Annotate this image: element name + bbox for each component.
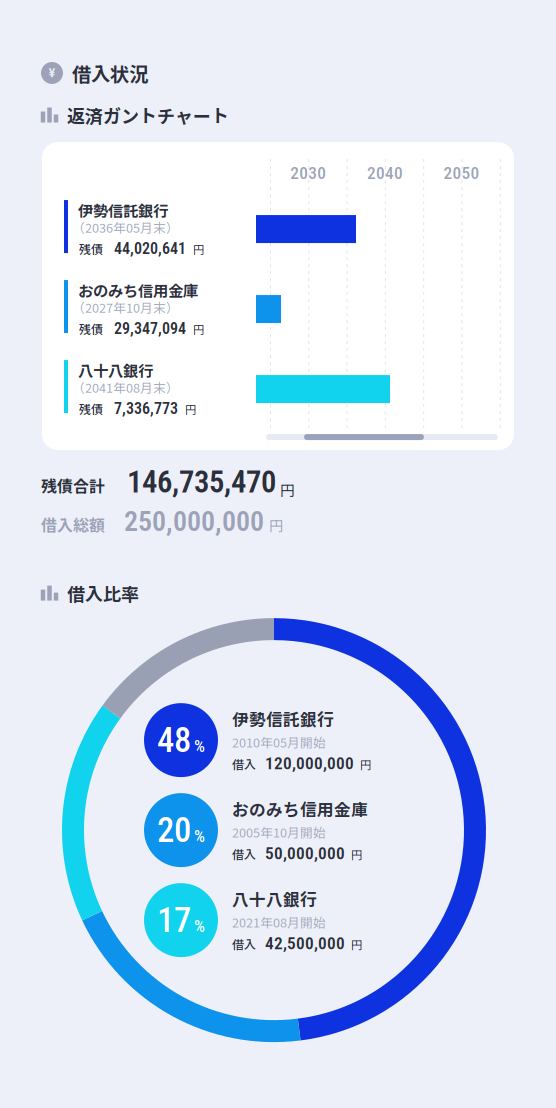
staticText: 44,020,641	[114, 239, 186, 258]
staticText: ¥	[48, 66, 55, 80]
staticText: 借入	[232, 935, 256, 953]
staticText: 残債合計	[41, 474, 105, 497]
staticText: 円	[185, 401, 196, 417]
staticText: （2027年10月末）	[72, 298, 179, 316]
staticText: （2041年08月末）	[72, 378, 179, 396]
staticText: 借入総額	[41, 513, 105, 536]
staticText: 48	[157, 720, 191, 760]
staticText: 17	[157, 900, 191, 940]
staticText: 円	[280, 479, 295, 500]
staticText: 八十八銀行	[232, 887, 317, 911]
staticText: 返済ガントチャート	[67, 102, 229, 128]
staticText: 円	[360, 756, 371, 772]
staticText: 借入状況	[72, 59, 148, 87]
staticText: 円	[269, 515, 283, 535]
staticText: 20	[157, 810, 191, 850]
staticText: 42,500,000	[265, 933, 345, 953]
staticText: 残債	[79, 240, 103, 257]
staticText: %	[194, 826, 205, 846]
staticText: 借入比率	[67, 580, 139, 606]
staticText: おのみち信用金庫	[78, 279, 198, 301]
staticText: （2036年05月末）	[72, 218, 179, 236]
staticText: %	[194, 916, 205, 936]
staticText: 7,336,773	[114, 399, 178, 418]
staticText: 円	[193, 241, 204, 257]
staticText: %	[194, 736, 205, 756]
staticText: 2010年05月開始	[232, 733, 326, 751]
staticText: おのみち信用金庫	[232, 797, 368, 821]
staticText: 2030	[290, 163, 326, 183]
staticText: 円	[351, 846, 362, 862]
staticText: 2005年10月開始	[232, 823, 326, 841]
staticText: 伊勢信託銀行	[232, 707, 334, 731]
staticText: 円	[351, 936, 362, 952]
staticText: 146,735,470	[127, 464, 276, 500]
staticText: 50,000,000	[265, 843, 345, 863]
staticText: 250,000,000	[124, 505, 264, 538]
staticText: 残債	[79, 320, 103, 337]
staticText: 借入	[232, 755, 256, 773]
staticText: 残債	[79, 400, 103, 417]
staticText: 円	[193, 321, 204, 337]
staticText: 2021年08月開始	[232, 913, 326, 931]
staticText: 伊勢信託銀行	[78, 199, 168, 221]
staticText: 2040	[367, 163, 403, 183]
staticText: 29,347,094	[114, 319, 186, 338]
staticText: 借入	[232, 845, 256, 863]
staticText: 2050	[443, 163, 479, 183]
staticText: 120,000,000	[265, 753, 354, 773]
staticText: 八十八銀行	[78, 359, 153, 381]
